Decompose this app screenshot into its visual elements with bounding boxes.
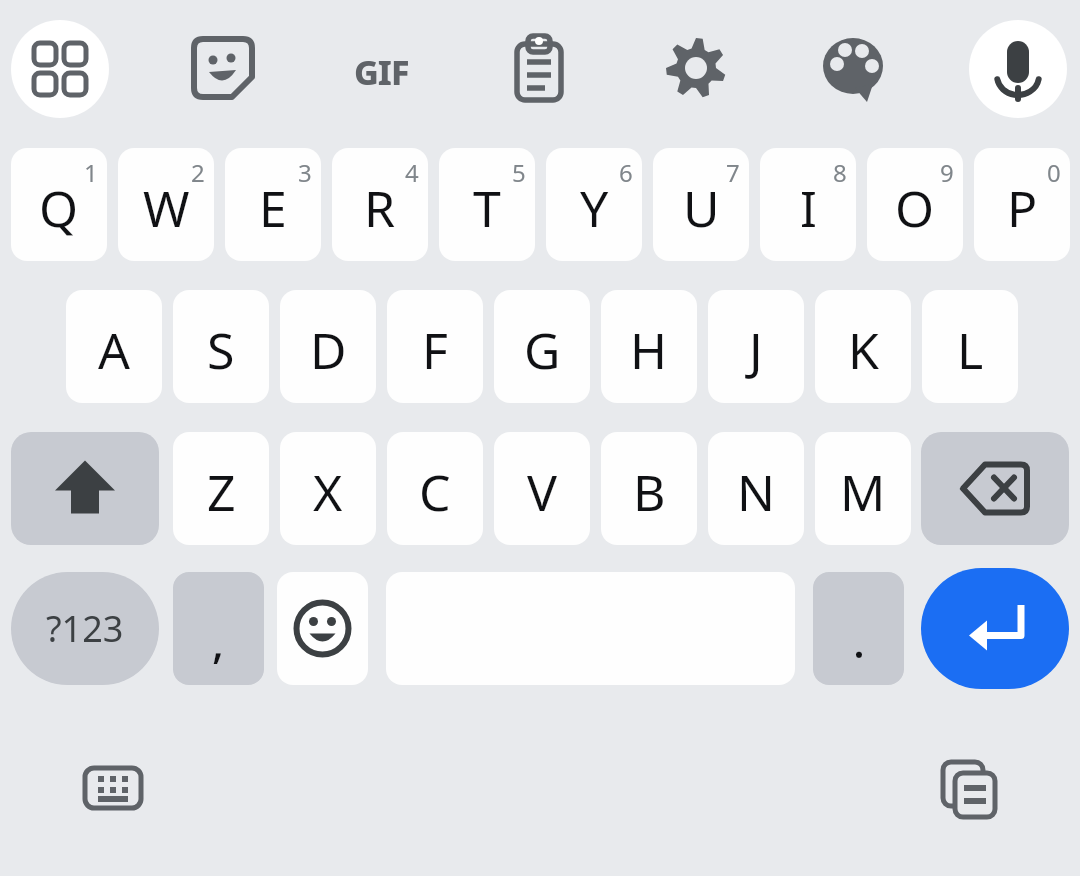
staticText: Y bbox=[580, 174, 609, 242]
button[interactable]: M bbox=[815, 432, 911, 545]
staticText: M bbox=[840, 458, 886, 526]
button[interactable]: Keyboard tool bbox=[935, 752, 1003, 820]
button[interactable]: K bbox=[815, 290, 911, 403]
staticText: H bbox=[630, 316, 668, 384]
button[interactable]: G bbox=[494, 290, 590, 403]
staticText: V bbox=[527, 458, 557, 526]
staticText: W bbox=[143, 174, 190, 242]
staticText: Z bbox=[207, 458, 236, 526]
staticText: 1 bbox=[84, 156, 98, 189]
staticText: GIF bbox=[354, 49, 409, 95]
button[interactable]: J bbox=[708, 290, 804, 403]
button[interactable]: B bbox=[601, 432, 697, 545]
staticText: G bbox=[524, 316, 561, 384]
button[interactable]: GIF bbox=[336, 44, 426, 100]
staticText: K bbox=[848, 316, 879, 384]
button[interactable]: Keyboard tool bbox=[811, 26, 895, 110]
button[interactable]: Modifier key bbox=[921, 432, 1069, 545]
button[interactable]: R bbox=[332, 148, 428, 261]
button[interactable]: A bbox=[66, 290, 162, 403]
button[interactable]: O bbox=[867, 148, 963, 261]
staticText: , bbox=[212, 611, 225, 671]
staticText: Q bbox=[39, 174, 79, 242]
button[interactable]: P bbox=[974, 148, 1070, 261]
button[interactable]: V bbox=[494, 432, 590, 545]
staticText: 3 bbox=[298, 156, 312, 189]
staticText: I bbox=[800, 174, 817, 242]
staticText: L bbox=[957, 316, 984, 384]
button[interactable]: Y bbox=[546, 148, 642, 261]
button[interactable]: , bbox=[173, 572, 264, 685]
button[interactable]: N bbox=[708, 432, 804, 545]
staticText: 2 bbox=[191, 156, 205, 189]
button[interactable]: Keyboard tool bbox=[181, 26, 265, 110]
button[interactable]: C bbox=[387, 432, 483, 545]
staticText: D bbox=[310, 316, 347, 384]
staticText: T bbox=[473, 174, 501, 242]
button[interactable]: . bbox=[813, 572, 904, 685]
button[interactable]: Z bbox=[173, 432, 269, 545]
staticText: O bbox=[895, 174, 935, 242]
button[interactable]: Keyboard tool bbox=[969, 20, 1067, 118]
staticText: N bbox=[737, 458, 775, 526]
staticText: X bbox=[313, 458, 343, 526]
staticText: E bbox=[259, 174, 287, 242]
staticText: 9 bbox=[940, 156, 954, 189]
button[interactable]: Keyboard tool bbox=[497, 26, 581, 110]
button[interactable]: U bbox=[653, 148, 749, 261]
staticText: R bbox=[364, 174, 396, 242]
staticText: F bbox=[422, 316, 448, 384]
button[interactable]: T bbox=[439, 148, 535, 261]
button[interactable]: X bbox=[280, 432, 376, 545]
button[interactable]: Keyboard tool bbox=[11, 20, 109, 118]
staticText: J bbox=[749, 316, 763, 384]
staticText: C bbox=[419, 458, 451, 526]
button[interactable]: S bbox=[173, 290, 269, 403]
button[interactable]: Enter bbox=[921, 568, 1069, 689]
staticText: 8 bbox=[833, 156, 847, 189]
staticText: 5 bbox=[512, 156, 526, 189]
staticText: 0 bbox=[1047, 156, 1061, 189]
button[interactable]: Keyboard tool bbox=[79, 754, 147, 822]
staticText: 7 bbox=[726, 156, 740, 189]
button[interactable]: H bbox=[601, 290, 697, 403]
button[interactable]: F bbox=[387, 290, 483, 403]
button[interactable]: Q bbox=[11, 148, 107, 261]
staticText: B bbox=[633, 458, 666, 526]
button[interactable]: W bbox=[118, 148, 214, 261]
staticText: ?123 bbox=[46, 604, 124, 653]
staticText: A bbox=[98, 316, 130, 384]
staticText: . bbox=[853, 611, 865, 671]
staticText: U bbox=[683, 174, 720, 242]
button[interactable]: I bbox=[760, 148, 856, 261]
button[interactable]: Key bbox=[277, 572, 368, 685]
button[interactable]: E bbox=[225, 148, 321, 261]
staticText: 4 bbox=[405, 156, 419, 189]
staticText: P bbox=[1007, 174, 1038, 242]
button[interactable]: L bbox=[922, 290, 1018, 403]
button[interactable]: Keyboard tool bbox=[654, 26, 738, 110]
staticText: S bbox=[207, 316, 235, 384]
button[interactable]: Modifier key bbox=[11, 432, 159, 545]
staticText: 6 bbox=[619, 156, 633, 189]
button[interactable]: D bbox=[280, 290, 376, 403]
button[interactable]: ?123 bbox=[11, 572, 159, 685]
